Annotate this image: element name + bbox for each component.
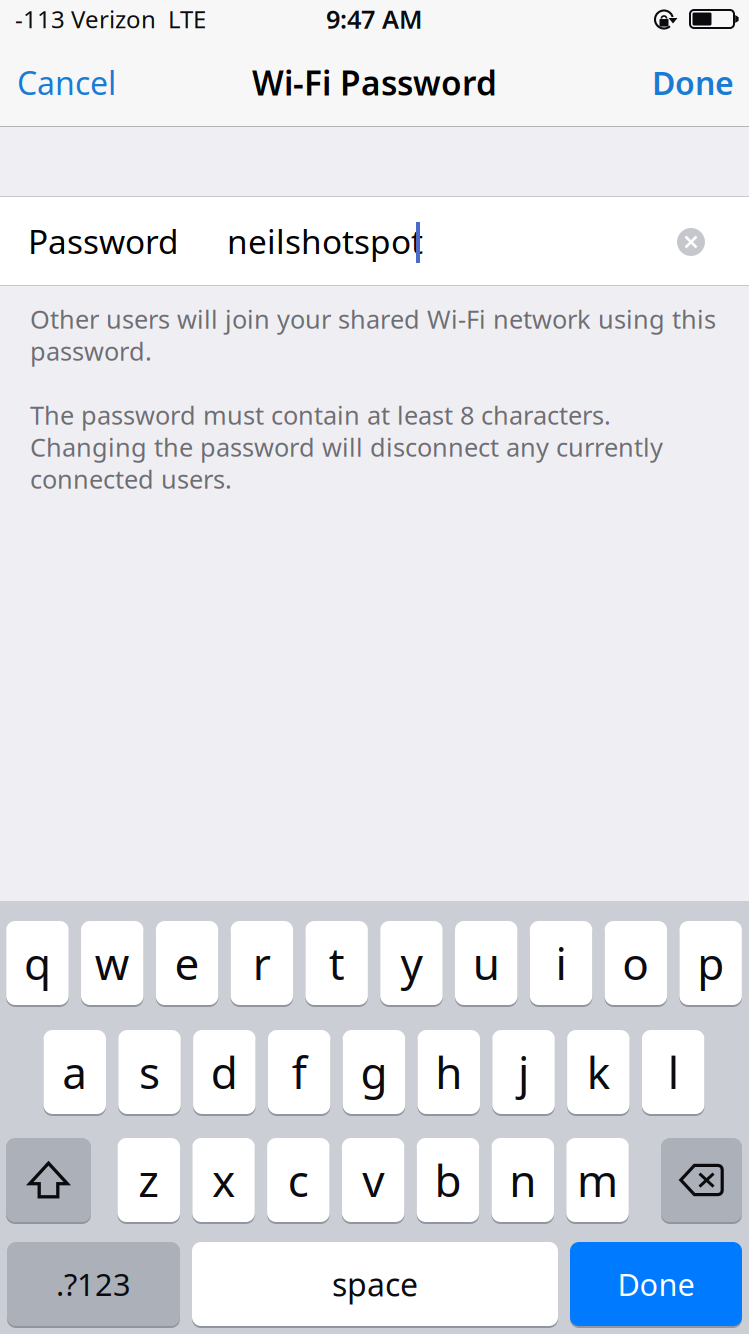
button[interactable]: h [417, 1030, 480, 1116]
staticText: r [253, 934, 271, 992]
button[interactable]: d [193, 1030, 256, 1116]
button[interactable]: o [605, 921, 667, 1007]
button[interactable]: Done [549, 38, 749, 127]
button[interactable]: u [455, 921, 517, 1007]
staticText: f [292, 1043, 307, 1101]
button[interactable]: Clear text [677, 228, 705, 256]
staticText: s [139, 1043, 160, 1101]
staticText: Password [28, 219, 179, 263]
staticText: z [138, 1151, 159, 1209]
button[interactable]: x [192, 1138, 255, 1224]
button[interactable]: v [342, 1138, 404, 1224]
button[interactable]: Cancel [0, 38, 200, 127]
button[interactable]: Delete [661, 1138, 742, 1224]
staticText: d [211, 1043, 238, 1101]
staticText: h [435, 1043, 462, 1101]
staticText: n [509, 1151, 536, 1209]
button[interactable]: a [43, 1030, 106, 1116]
staticText: Wi-Fi Password [252, 60, 497, 105]
button[interactable]: q [6, 921, 69, 1007]
staticText: x [212, 1151, 235, 1209]
button[interactable]: .?123 [7, 1242, 180, 1328]
button[interactable]: n [491, 1138, 554, 1224]
staticText: Cancel [17, 61, 116, 104]
staticText: k [587, 1043, 610, 1101]
staticText: space [332, 1263, 418, 1305]
staticText: The password must contain at least 8 cha… [30, 398, 611, 432]
staticText: connected users. [30, 462, 232, 496]
button[interactable]: Shift [6, 1138, 91, 1224]
staticText: 9:47 AM [326, 2, 423, 36]
staticText: l [668, 1043, 679, 1101]
staticText: u [473, 934, 500, 992]
button[interactable]: g [343, 1030, 405, 1116]
staticText: y [400, 934, 422, 992]
button[interactable]: z [117, 1138, 180, 1224]
staticText: q [24, 934, 51, 992]
staticText: Done [652, 61, 734, 104]
staticText: i [556, 934, 567, 992]
button[interactable]: j [492, 1030, 555, 1116]
staticText: .?123 [56, 1264, 131, 1304]
staticText: Done [617, 1264, 694, 1304]
button[interactable]: b [417, 1138, 479, 1224]
button[interactable]: f [268, 1030, 330, 1116]
button[interactable]: t [305, 921, 368, 1007]
staticText: t [329, 934, 345, 992]
button[interactable]: w [81, 921, 143, 1007]
button[interactable]: space [192, 1242, 558, 1328]
staticText: neilshotspot [227, 219, 423, 263]
button[interactable]: e [156, 921, 218, 1007]
button[interactable]: c [267, 1138, 330, 1224]
button[interactable]: m [566, 1138, 629, 1224]
staticText: g [360, 1043, 387, 1101]
button[interactable]: i [530, 921, 592, 1007]
button[interactable]: r [231, 921, 293, 1007]
staticText: -113 Verizon LTE [15, 3, 206, 35]
staticText: o [622, 934, 649, 992]
staticText: m [577, 1151, 618, 1209]
staticText: password. [30, 334, 152, 368]
staticText: e [174, 934, 199, 992]
staticText: p [697, 934, 724, 992]
button[interactable]: p [679, 921, 742, 1007]
button[interactable]: Done [570, 1242, 742, 1328]
staticText: v [362, 1151, 384, 1209]
button[interactable]: s [118, 1030, 181, 1116]
staticText: w [95, 934, 130, 992]
staticText: Other users will join your shared Wi-Fi … [30, 302, 716, 336]
staticText: c [288, 1151, 309, 1209]
staticText: j [518, 1043, 529, 1101]
staticText: Changing the password will disconnect an… [30, 430, 663, 464]
staticText: b [434, 1151, 461, 1209]
button[interactable]: l [642, 1030, 704, 1116]
staticText: a [62, 1043, 87, 1101]
button[interactable]: k [567, 1030, 630, 1116]
button[interactable]: y [380, 921, 443, 1007]
